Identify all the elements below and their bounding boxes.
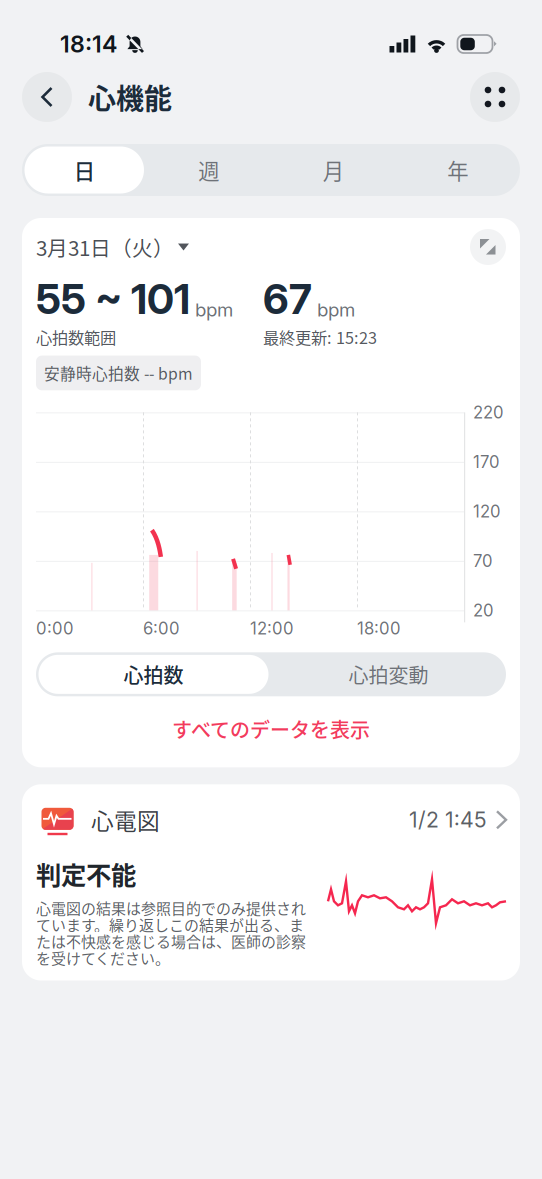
staticText: 心電図の結果は参照目的でのみ提供されています。繰り返しこの結果が出る、または不快… bbox=[36, 897, 306, 968]
staticText: 心電図 bbox=[91, 803, 160, 836]
staticText: 20 bbox=[473, 600, 494, 620]
staticText: 18:14 bbox=[60, 30, 117, 58]
button[interactable]: 心電図 bbox=[22, 784, 520, 980]
button[interactable]: Expand chart bbox=[470, 229, 506, 265]
staticText: 70 bbox=[473, 551, 493, 571]
button[interactable]: 3月31日（火） bbox=[36, 232, 189, 262]
staticText: 心拍数 bbox=[123, 660, 183, 689]
staticText: 日 bbox=[74, 155, 95, 185]
staticText: 安静時心拍数 -- bpm bbox=[44, 362, 193, 384]
staticText: 55 ~ 101 bbox=[36, 274, 190, 324]
staticText: 12:00 bbox=[250, 618, 294, 638]
button[interactable]: 年 bbox=[395, 144, 520, 196]
button[interactable]: 週 bbox=[146, 144, 271, 196]
staticText: 心拍変動 bbox=[348, 660, 428, 689]
staticText: bpm bbox=[317, 298, 355, 321]
staticText: 0:00 bbox=[36, 618, 74, 638]
staticText: 18:00 bbox=[357, 618, 401, 638]
button[interactable]: 心拍数 bbox=[36, 652, 271, 696]
staticText: 3月31日（火） bbox=[36, 232, 174, 262]
staticText: 1/2 1:45 bbox=[409, 807, 487, 833]
staticText: 週 bbox=[198, 155, 219, 185]
staticText: 170 bbox=[473, 452, 500, 472]
staticText: bpm bbox=[195, 298, 233, 321]
button[interactable]: 日 bbox=[22, 144, 146, 196]
button[interactable]: 月 bbox=[271, 144, 395, 196]
staticText: 心拍数範囲 bbox=[36, 325, 116, 349]
button[interactable]: More options bbox=[470, 72, 520, 122]
staticText: すべてのデータを表示 bbox=[172, 714, 370, 743]
staticText: 心機能 bbox=[88, 77, 172, 117]
button[interactable]: Back bbox=[22, 72, 72, 122]
button[interactable]: 心拍変動 bbox=[271, 652, 506, 696]
staticText: 220 bbox=[473, 402, 504, 422]
button[interactable]: すべてのデータを表示 bbox=[36, 700, 506, 757]
staticText: 最終更新: 15:23 bbox=[263, 325, 377, 349]
staticText: 年 bbox=[447, 155, 468, 185]
staticText: 6:00 bbox=[143, 618, 180, 638]
staticText: 67 bbox=[263, 274, 312, 324]
staticText: 判定不能 bbox=[36, 855, 136, 892]
staticText: 月 bbox=[323, 155, 344, 185]
staticText: 120 bbox=[473, 501, 501, 521]
